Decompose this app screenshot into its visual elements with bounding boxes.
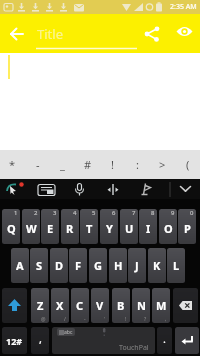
staticText: _	[60, 157, 65, 172]
staticText: ?	[144, 316, 147, 323]
staticText: !	[111, 157, 114, 172]
staticText: T	[86, 221, 93, 236]
staticText: 1	[14, 209, 18, 217]
button[interactable]: F	[69, 248, 87, 283]
staticText: 12#	[6, 335, 23, 347]
button[interactable]: T	[80, 209, 98, 244]
button[interactable]: Q	[2, 209, 20, 244]
staticText: ,	[39, 331, 42, 346]
staticText: 0	[190, 209, 194, 217]
button[interactable]: O	[159, 209, 177, 244]
staticText: !	[125, 316, 127, 323]
staticText: B	[117, 298, 125, 313]
staticText: >	[159, 157, 166, 172]
staticText: Q	[7, 221, 16, 236]
button[interactable]	[138, 19, 166, 48]
staticText: /	[64, 316, 66, 323]
button[interactable]: abc	[52, 327, 155, 354]
button[interactable]: (	[175, 150, 200, 179]
staticText: *	[9, 157, 16, 172]
button[interactable]: :	[125, 150, 150, 179]
staticText: :	[136, 157, 139, 172]
button[interactable]: W	[22, 209, 40, 244]
button[interactable]: K	[148, 248, 166, 283]
button[interactable]: #	[75, 150, 100, 179]
staticText: '	[104, 316, 106, 323]
button[interactable]: B	[112, 288, 130, 323]
staticText: N	[137, 298, 146, 313]
staticText: abc	[64, 329, 73, 336]
staticText: V	[96, 298, 104, 313]
button[interactable]: C	[71, 288, 89, 323]
button[interactable]	[2, 288, 27, 323]
button[interactable]: _	[50, 150, 75, 179]
button[interactable]: M	[152, 288, 170, 323]
staticText: G	[94, 258, 102, 273]
staticText: 2	[34, 209, 38, 217]
button[interactable]: A	[11, 248, 29, 283]
staticText: Z	[37, 298, 44, 313]
button[interactable]: N	[132, 288, 150, 323]
staticText: -	[84, 316, 86, 323]
button[interactable]: U	[120, 209, 138, 244]
button[interactable]: I	[139, 209, 157, 244]
staticText: J	[135, 258, 139, 273]
button[interactable]: ,	[31, 327, 49, 354]
staticText: 2:35 AM	[170, 2, 197, 12]
button[interactable]: -	[25, 150, 50, 179]
button[interactable]: Z	[31, 288, 49, 323]
button[interactable]	[175, 327, 199, 354]
staticText: E	[47, 221, 54, 236]
staticText: TouchPal	[119, 343, 149, 353]
staticText: 7	[132, 209, 136, 217]
staticText: Y	[106, 221, 113, 236]
button[interactable]: X	[51, 288, 69, 323]
button[interactable]: *	[0, 150, 25, 179]
staticText: L	[173, 258, 180, 273]
button[interactable]: R	[61, 209, 79, 244]
staticText: 9	[171, 209, 175, 217]
staticText: 6	[112, 209, 116, 217]
staticText: M	[156, 298, 167, 313]
staticText: O	[164, 221, 173, 236]
button[interactable]: L	[167, 248, 185, 283]
button[interactable]	[173, 288, 198, 323]
staticText: .	[163, 331, 166, 346]
staticText: F	[75, 258, 82, 273]
button[interactable]: H	[109, 248, 127, 283]
button[interactable]: 12#	[2, 327, 27, 354]
button[interactable]: D	[50, 248, 68, 283]
button[interactable]: S	[30, 248, 48, 283]
staticText: H	[114, 258, 123, 273]
staticText: ,	[165, 316, 167, 323]
staticText: I	[146, 221, 151, 236]
button[interactable]	[170, 179, 200, 199]
button[interactable]: J	[128, 248, 146, 283]
button[interactable]: >	[150, 150, 175, 179]
button[interactable]: P	[178, 209, 196, 244]
staticText: U	[125, 221, 134, 236]
staticText: 8	[151, 209, 155, 217]
staticText: #	[84, 157, 92, 172]
button[interactable]	[0, 14, 34, 53]
button[interactable]: E	[41, 209, 59, 244]
staticText: 4	[73, 209, 77, 217]
staticText: 5	[92, 209, 96, 217]
staticText: -	[36, 157, 40, 172]
staticText: (	[186, 157, 190, 172]
button[interactable]	[170, 19, 198, 48]
button[interactable]: Y	[100, 209, 118, 244]
button[interactable]: G	[89, 248, 107, 283]
staticText: 3	[53, 209, 57, 217]
staticText: X	[56, 298, 64, 313]
button[interactable]: !	[100, 150, 125, 179]
staticText: Title	[37, 25, 63, 43]
button[interactable]: V	[91, 288, 109, 323]
staticText: @	[41, 316, 46, 323]
staticText: D	[55, 258, 64, 273]
staticText: A	[16, 258, 24, 273]
staticText: W	[26, 221, 37, 236]
staticText: K	[153, 258, 161, 273]
staticText: C	[76, 298, 84, 313]
button[interactable]: .	[157, 327, 172, 354]
